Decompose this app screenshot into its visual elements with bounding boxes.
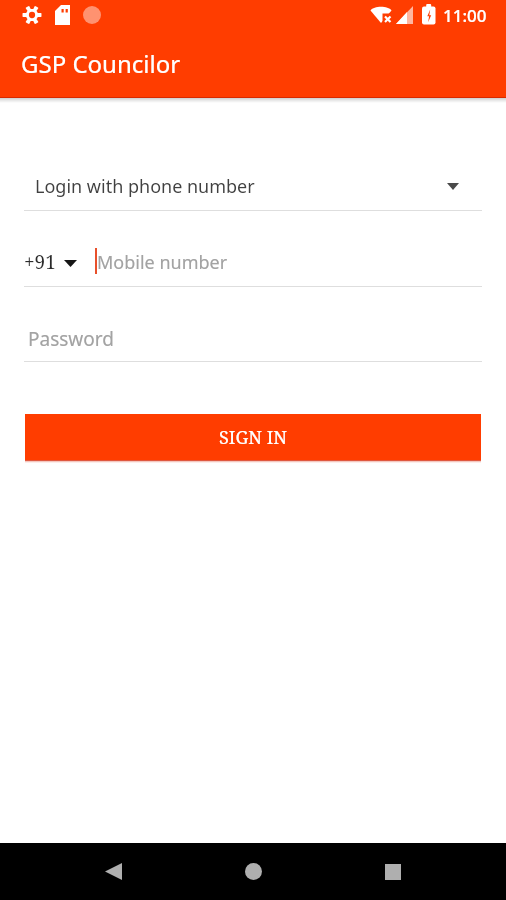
button[interactable]: Password bbox=[24, 322, 482, 356]
staticText: SIGN IN bbox=[219, 425, 288, 450]
button[interactable]: Back bbox=[66, 843, 161, 900]
staticText: 11:00 bbox=[443, 4, 487, 27]
button[interactable]: Home bbox=[206, 843, 301, 900]
staticText: Mobile number bbox=[97, 250, 228, 275]
button[interactable]: Login with phone number bbox=[24, 172, 482, 211]
staticText: +91 bbox=[24, 249, 56, 275]
button[interactable]: Recent apps bbox=[345, 843, 440, 900]
staticText: Password bbox=[28, 326, 114, 352]
button[interactable]: SIGN IN bbox=[25, 414, 481, 460]
button[interactable]: Mobile number bbox=[95, 246, 482, 280]
button[interactable]: +91 bbox=[24, 246, 77, 280]
staticText: GSP Councilor bbox=[21, 47, 181, 80]
staticText: Login with phone number bbox=[35, 174, 255, 199]
